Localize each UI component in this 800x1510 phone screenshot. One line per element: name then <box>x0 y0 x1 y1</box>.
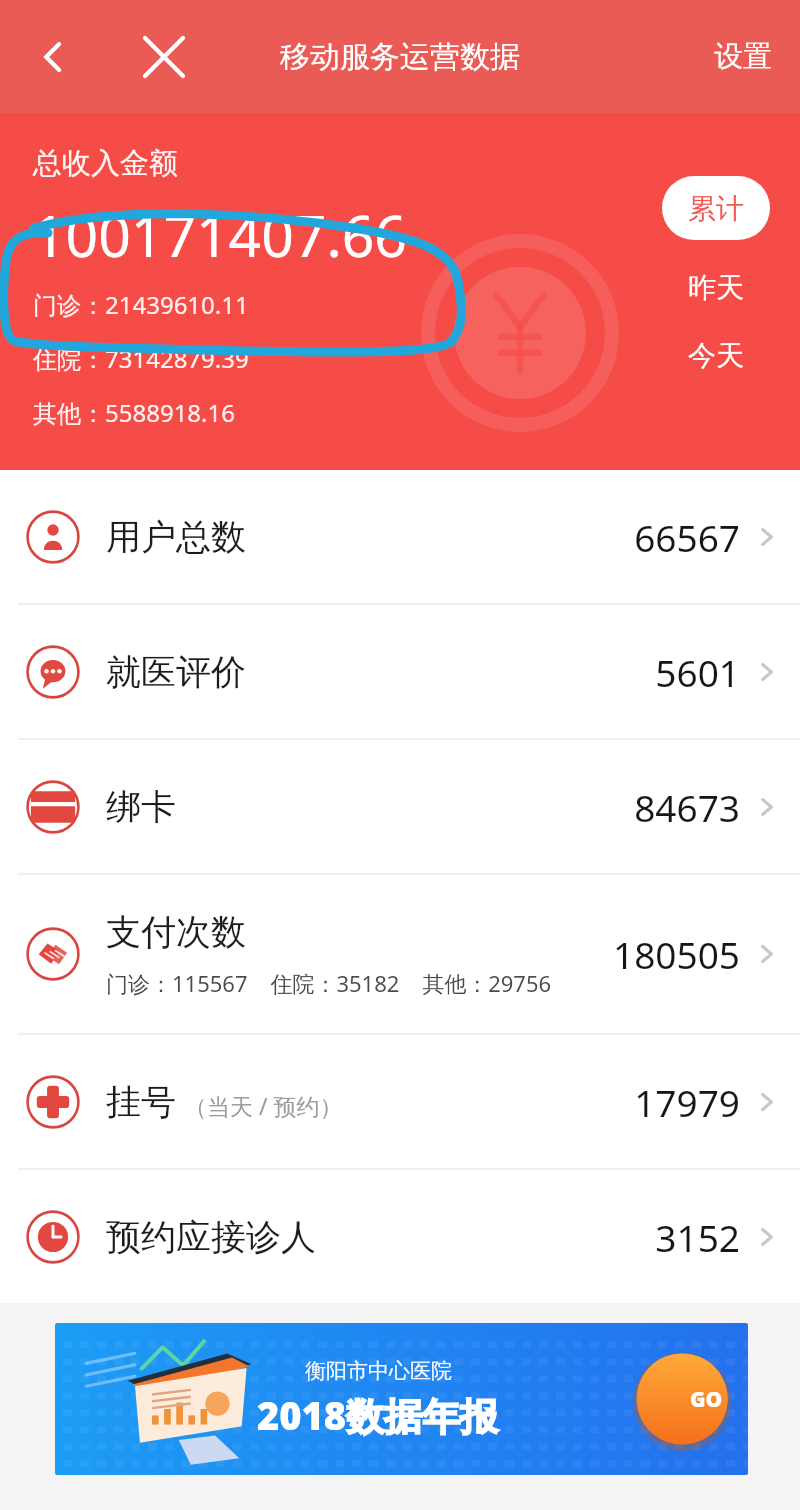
staticText: 设置 <box>714 38 772 75</box>
staticText: 2018数据年报 <box>257 1389 499 1441</box>
button[interactable]: Back <box>18 22 88 92</box>
staticText: 用户总数 <box>106 515 246 559</box>
staticText: 累计 <box>688 191 744 226</box>
staticText: 就医评价 <box>106 650 246 694</box>
button[interactable]: 衡阳市中心医院 <box>55 1323 748 1475</box>
staticText: 100171407.66 <box>33 196 407 274</box>
button[interactable]: 用户总数 <box>0 470 800 603</box>
staticText: 衡阳市中心医院 <box>305 1358 452 1384</box>
staticText: 66567 <box>634 512 740 562</box>
staticText: 门诊：115567 住院：35182 其他：29756 <box>106 968 552 998</box>
staticText: 总收入金额 <box>33 145 178 182</box>
staticText: 今天 <box>688 338 744 373</box>
staticText: 17979 <box>634 1077 740 1127</box>
staticText: 挂号 <box>106 1080 176 1124</box>
staticText: 84673 <box>634 782 740 832</box>
button[interactable]: 累计 <box>662 176 770 240</box>
staticText: 昨天 <box>688 270 744 305</box>
button[interactable]: 预约应接诊人 <box>0 1170 800 1303</box>
staticText: 支付次数 <box>106 910 246 954</box>
button[interactable]: 支付次数 <box>0 875 800 1033</box>
button[interactable]: 昨天 <box>662 258 770 316</box>
staticText: 5601 <box>655 647 740 697</box>
button[interactable]: 今天 <box>662 326 770 384</box>
staticText: 180505 <box>613 929 740 979</box>
staticText: 预约应接诊人 <box>106 1215 316 1259</box>
button[interactable]: Close <box>128 21 200 93</box>
button[interactable]: 绑卡 <box>0 740 800 873</box>
staticText: 绑卡 <box>106 785 176 829</box>
button[interactable]: Go <box>683 1376 729 1422</box>
button[interactable]: 就医评价 <box>0 605 800 738</box>
staticText: 门诊：21439610.11 <box>33 288 249 321</box>
staticText: 其他：5588918.16 <box>33 396 235 429</box>
staticText: 3152 <box>655 1212 740 1262</box>
staticText: GO <box>690 1385 723 1414</box>
button[interactable]: 挂号 <box>0 1035 800 1168</box>
staticText: 移动服务运营数据 <box>280 38 520 76</box>
button[interactable]: 设置 <box>696 24 790 89</box>
staticText: 住院：73142879.39 <box>33 342 249 375</box>
staticText: （当天 / 预约） <box>184 1090 343 1121</box>
